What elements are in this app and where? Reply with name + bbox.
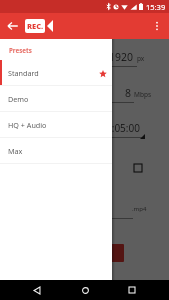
staticText: Max bbox=[8, 146, 23, 156]
button[interactable]: Toggle option bbox=[133, 163, 142, 172]
staticText: Mbps bbox=[134, 90, 152, 99]
staticText: 1920 bbox=[109, 50, 134, 64]
staticText: Demo bbox=[8, 94, 29, 104]
button[interactable]: HQ + Audio bbox=[0, 112, 112, 137]
button[interactable]: Standard bbox=[0, 60, 112, 85]
staticText: 8 bbox=[125, 86, 132, 100]
button[interactable]: Home bbox=[75, 280, 95, 300]
staticText: REC. bbox=[27, 21, 44, 31]
staticText: HQ + Audio bbox=[8, 120, 47, 130]
button[interactable]: More options bbox=[148, 17, 166, 35]
staticText: .mp4 bbox=[132, 205, 147, 213]
staticText: 15:39 bbox=[146, 2, 166, 12]
button[interactable]: Back bbox=[27, 280, 47, 300]
staticText: Standard bbox=[8, 68, 39, 78]
staticText: Presets bbox=[9, 46, 32, 54]
staticText: px bbox=[137, 54, 145, 63]
staticText: 1:05:00 bbox=[106, 121, 140, 135]
button[interactable]: Max bbox=[0, 138, 112, 163]
button[interactable]: Demo bbox=[0, 86, 112, 111]
button[interactable] bbox=[86, 244, 124, 262]
button[interactable]: Recent apps bbox=[122, 280, 142, 300]
button[interactable]: Back bbox=[2, 16, 22, 36]
